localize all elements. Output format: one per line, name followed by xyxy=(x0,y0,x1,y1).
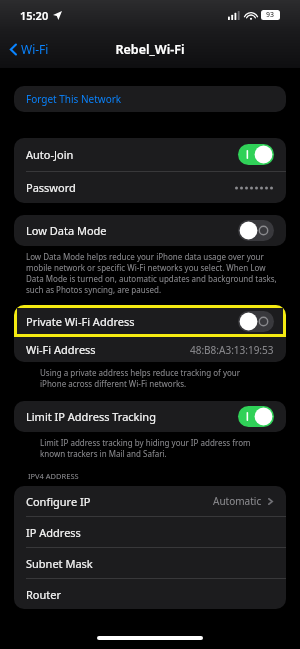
staticText: Forget This Network xyxy=(26,92,122,106)
staticText: Low Data Mode helps reduce your iPhone d… xyxy=(26,251,278,295)
button[interactable]: Configure IP xyxy=(14,486,286,516)
button[interactable]: Forget This Network xyxy=(14,86,286,112)
staticText: Wi-Fi Address xyxy=(26,342,96,357)
staticText: Password xyxy=(26,180,76,195)
staticText: Subnet Mask xyxy=(26,556,93,571)
staticText: IP Address xyxy=(26,525,81,540)
staticText: 48:B8:A3:13:19:53 xyxy=(190,343,274,357)
button[interactable]: Subnet Mask xyxy=(14,548,286,578)
other: Home indicator xyxy=(97,636,203,640)
staticText: IPV4 ADDRESS xyxy=(28,471,79,481)
button[interactable]: Auto-Join xyxy=(14,138,286,171)
button[interactable]: IP Address xyxy=(14,517,286,547)
staticText: Using a private address helps reduce tra… xyxy=(40,367,264,389)
staticText: Automatic xyxy=(213,494,262,508)
button[interactable]: Wi-Fi Address xyxy=(14,337,286,362)
button[interactable]: Limit IP Address Tracking xyxy=(14,401,286,432)
staticText: 93 xyxy=(266,10,275,20)
staticText: Router xyxy=(26,587,62,602)
button[interactable]: Password xyxy=(14,172,286,203)
staticText: 15:20 xyxy=(20,8,49,23)
staticText: Limit IP address tracking by hiding your… xyxy=(40,437,264,459)
staticText: Limit IP Address Tracking xyxy=(26,409,156,424)
button[interactable]: Wi-Fi xyxy=(0,37,57,61)
button[interactable]: Low Data Mode xyxy=(14,215,286,246)
button[interactable]: Router xyxy=(14,579,286,609)
staticText: Private Wi-Fi Address xyxy=(26,314,135,329)
button[interactable]: Private Wi-Fi Address xyxy=(14,305,286,337)
staticText: Low Data Mode xyxy=(26,223,107,238)
staticText: Configure IP xyxy=(26,494,91,509)
staticText: Auto-Join xyxy=(26,147,74,162)
staticText: Wi-Fi xyxy=(21,41,49,57)
staticText: Rebel_Wi-Fi xyxy=(115,41,185,58)
